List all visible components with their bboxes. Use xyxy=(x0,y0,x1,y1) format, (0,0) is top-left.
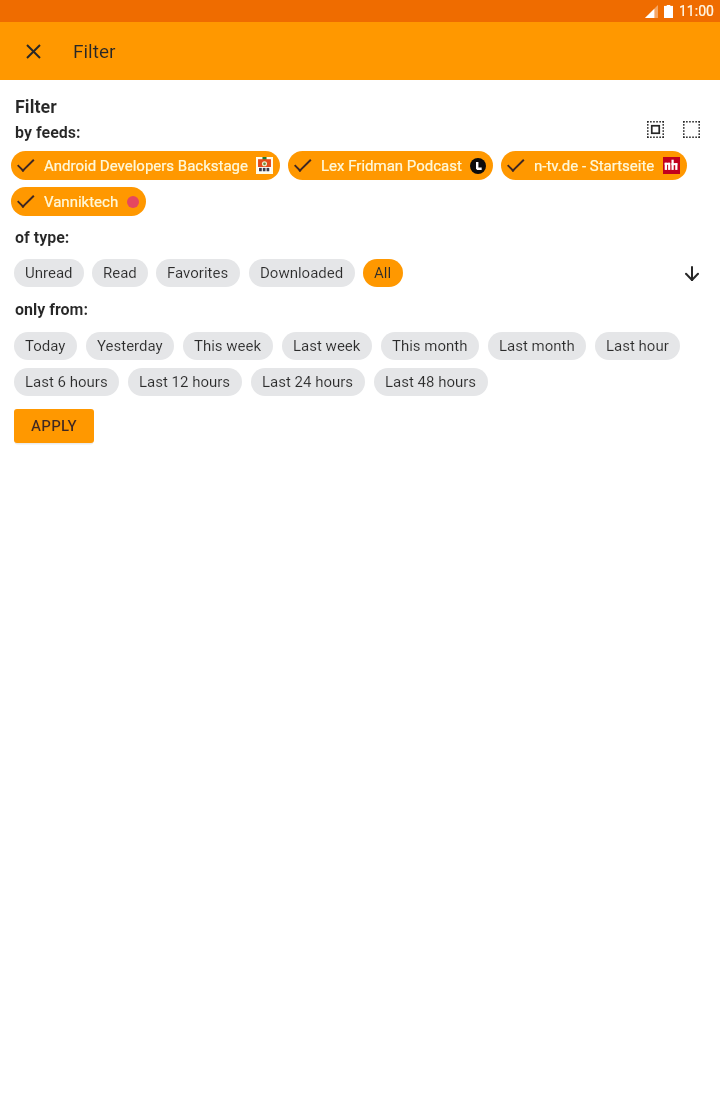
button[interactable]: Android Developers Backstage xyxy=(11,151,280,180)
button[interactable]: This month xyxy=(381,332,479,360)
staticText: Downloaded xyxy=(260,264,344,282)
button[interactable]: Last 48 hours xyxy=(374,368,488,396)
button[interactable]: Last 6 hours xyxy=(14,368,119,396)
staticText: Unread xyxy=(25,264,73,282)
staticText: of type: xyxy=(15,228,70,247)
button[interactable]: Last 24 hours xyxy=(251,368,365,396)
button[interactable]: Downloaded xyxy=(249,259,355,287)
button[interactable]: Select none xyxy=(679,117,703,141)
staticText: Last 6 hours xyxy=(25,373,108,391)
staticText: APPLY xyxy=(31,417,77,435)
button[interactable]: Last 12 hours xyxy=(128,368,242,396)
button[interactable]: Today xyxy=(14,332,77,360)
staticText: Last 24 hours xyxy=(262,373,354,391)
button[interactable]: Read xyxy=(92,259,148,287)
button[interactable]: All xyxy=(363,259,403,287)
staticText: Last 12 hours xyxy=(139,373,231,391)
staticText: Last month xyxy=(499,337,575,355)
staticText: n-tv.de - Startseite xyxy=(534,157,655,175)
button[interactable]: Lex Fridman Podcast xyxy=(288,151,493,180)
button[interactable]: Close xyxy=(18,36,48,66)
button[interactable]: Favorites xyxy=(156,259,240,287)
staticText: Today xyxy=(25,337,66,355)
button[interactable]: APPLY xyxy=(14,409,94,443)
button[interactable]: Last week xyxy=(282,332,372,360)
staticText: only from: xyxy=(15,300,88,319)
button[interactable]: Select all xyxy=(643,117,667,141)
staticText: Last week xyxy=(293,337,361,355)
staticText: Vanniktech xyxy=(44,193,119,211)
button[interactable]: n-tv.de - Startseite xyxy=(501,151,687,180)
staticText: 11:00 xyxy=(679,3,714,19)
staticText: All xyxy=(374,264,392,282)
button[interactable]: This week xyxy=(183,332,273,360)
staticText: Read xyxy=(103,264,137,282)
staticText: by feeds: xyxy=(15,123,81,142)
staticText: Favorites xyxy=(167,264,229,282)
staticText: Android Developers Backstage xyxy=(44,157,248,175)
staticText: Lex Fridman Podcast xyxy=(321,157,462,175)
staticText: Last hour xyxy=(606,337,669,355)
button[interactable]: Unread xyxy=(14,259,84,287)
button[interactable]: Show more xyxy=(678,259,706,287)
button[interactable]: Last hour xyxy=(595,332,680,360)
staticText: Filter xyxy=(15,96,57,117)
staticText: Yesterday xyxy=(97,337,163,355)
button[interactable]: Vanniktech xyxy=(11,187,146,216)
staticText: Last 48 hours xyxy=(385,373,477,391)
button[interactable]: Yesterday xyxy=(86,332,174,360)
button[interactable]: Last month xyxy=(488,332,586,360)
staticText: This month xyxy=(392,337,468,355)
staticText: Filter xyxy=(73,40,116,62)
staticText: This week xyxy=(194,337,262,355)
